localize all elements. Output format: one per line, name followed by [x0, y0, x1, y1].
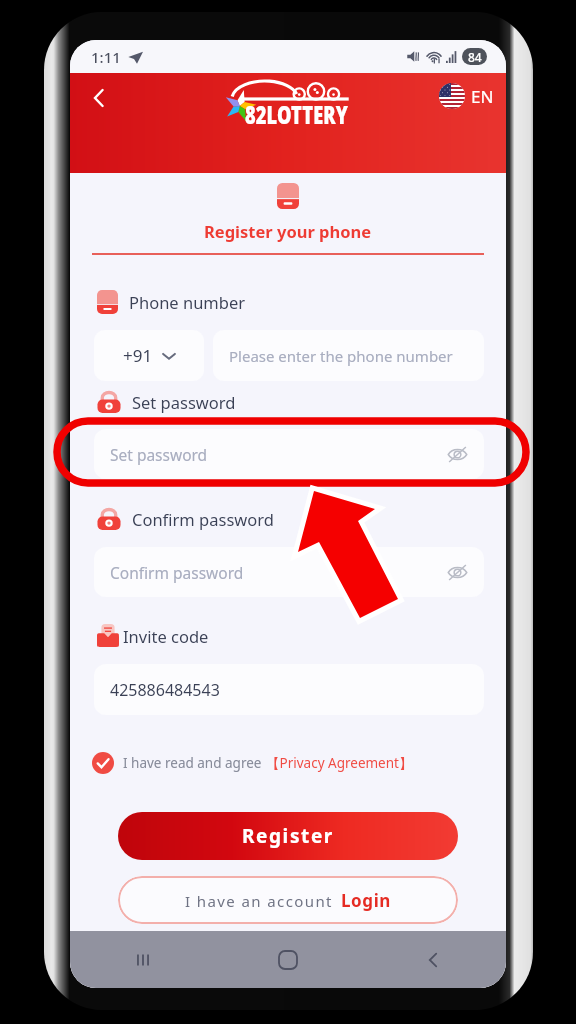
button[interactable]: Home — [264, 936, 312, 984]
staticText: EN — [471, 85, 494, 108]
button[interactable]: +91 — [94, 330, 204, 381]
button[interactable]: Recents — [119, 936, 167, 984]
staticText: I have an account — [185, 891, 333, 911]
button[interactable]: 425886484543 — [94, 664, 484, 715]
staticText: 【Privacy Agreement】 — [266, 754, 413, 772]
staticText: Invite code — [123, 625, 209, 647]
staticText: Set password — [110, 444, 208, 465]
staticText: Confirm password — [132, 508, 274, 530]
button[interactable]: Please enter the phone number — [213, 330, 484, 381]
staticText: 1:11 — [91, 47, 121, 67]
button[interactable]: Register — [118, 812, 458, 860]
staticText: Register — [242, 823, 334, 849]
staticText: 425886484543 — [110, 679, 220, 701]
button[interactable]: Set password — [94, 429, 484, 479]
staticText: I have read and agree — [123, 754, 262, 772]
button[interactable]: Confirm password — [94, 547, 484, 597]
button[interactable]: Back — [78, 77, 120, 119]
staticText: Phone number — [129, 291, 246, 313]
staticText: Please enter the phone number — [229, 346, 453, 366]
staticText: +91 — [123, 344, 153, 367]
button[interactable]: I have read and agree — [92, 752, 413, 774]
button[interactable]: Toggle password visibility — [444, 441, 470, 467]
staticText: Register your phone — [204, 220, 372, 242]
staticText: Login — [341, 889, 392, 912]
staticText: Set password — [132, 391, 236, 413]
staticText: 84 — [468, 49, 482, 65]
button[interactable]: I have an account — [118, 876, 458, 924]
staticText: 82LOTTERY — [245, 98, 349, 130]
button[interactable]: Toggle password visibility — [444, 559, 470, 585]
staticText: Confirm password — [110, 562, 244, 583]
button[interactable]: EN — [439, 83, 494, 109]
button[interactable]: Back — [409, 936, 457, 984]
